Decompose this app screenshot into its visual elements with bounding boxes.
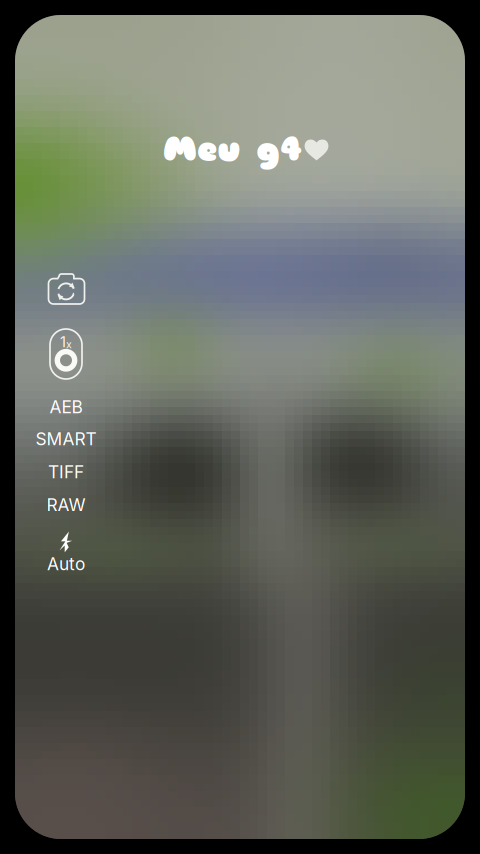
button[interactable]: 1x zoom (38, 323, 94, 385)
staticText: SMART (35, 428, 96, 449)
button[interactable]: Flash: Auto (20, 530, 112, 576)
button[interactable]: Meu g4 (141, 127, 351, 171)
staticText: Meu g4 (163, 127, 302, 171)
button[interactable]: TIFF (20, 457, 112, 487)
staticText: AEB (49, 396, 82, 417)
button[interactable]: Switch camera (38, 266, 94, 312)
staticText: x (66, 338, 72, 351)
staticText: RAW (46, 494, 85, 515)
staticText: Auto (47, 553, 85, 574)
staticText: 1 (60, 333, 66, 351)
button[interactable]: AEB (20, 392, 112, 422)
button[interactable]: SMART (20, 424, 112, 454)
button[interactable]: RAW (20, 490, 112, 520)
staticText: TIFF (48, 461, 84, 482)
